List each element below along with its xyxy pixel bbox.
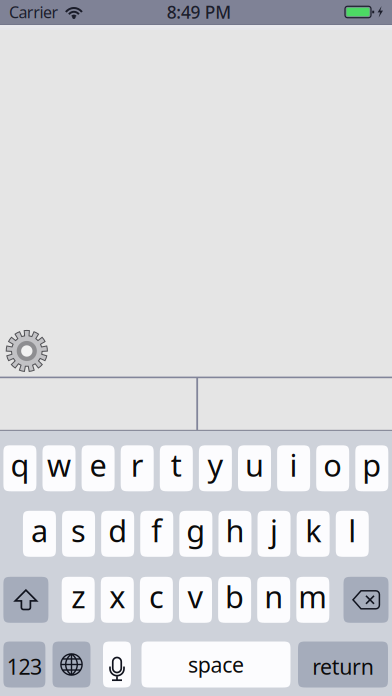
button[interactable]: y bbox=[199, 445, 232, 491]
staticText: Carrier bbox=[9, 1, 58, 23]
staticText: p bbox=[362, 444, 381, 485]
button[interactable]: h bbox=[218, 511, 251, 557]
button[interactable]: u bbox=[238, 445, 271, 491]
staticText: m bbox=[298, 576, 327, 617]
staticText: s bbox=[71, 510, 86, 551]
button[interactable]: o bbox=[316, 445, 349, 491]
staticText: r bbox=[131, 444, 144, 485]
staticText: q bbox=[10, 444, 29, 485]
button[interactable]: p bbox=[355, 445, 388, 491]
button[interactable]: return bbox=[298, 641, 388, 687]
button[interactable]: s bbox=[62, 511, 95, 557]
staticText: z bbox=[71, 576, 85, 617]
button[interactable]: m bbox=[296, 577, 329, 623]
button[interactable]: space bbox=[141, 641, 290, 687]
staticText: n bbox=[264, 576, 283, 617]
button[interactable]: w bbox=[42, 445, 75, 491]
button[interactable]: n bbox=[257, 577, 290, 623]
staticText: o bbox=[323, 444, 342, 485]
staticText: t bbox=[171, 444, 182, 485]
staticText: k bbox=[305, 510, 321, 551]
staticText: v bbox=[187, 576, 203, 617]
button[interactable]: a bbox=[23, 511, 56, 557]
button[interactable]: d bbox=[101, 511, 134, 557]
staticText: j bbox=[270, 510, 278, 551]
button[interactable]: l bbox=[336, 511, 369, 557]
staticText: space bbox=[188, 650, 244, 679]
staticText: i bbox=[290, 444, 298, 485]
button[interactable]: e bbox=[82, 445, 115, 491]
staticText: h bbox=[225, 510, 244, 551]
button[interactable] bbox=[343, 577, 388, 623]
button[interactable]: i bbox=[277, 445, 310, 491]
staticText: e bbox=[90, 444, 107, 485]
button[interactable]: c bbox=[140, 577, 173, 623]
staticText: 8:49 PM bbox=[167, 0, 231, 23]
staticText: a bbox=[31, 510, 48, 551]
staticText: return bbox=[312, 652, 374, 681]
button[interactable]: b bbox=[218, 577, 251, 623]
button[interactable]: r bbox=[121, 445, 154, 491]
button[interactable]: t bbox=[160, 445, 193, 491]
button[interactable]: 123 bbox=[3, 641, 45, 687]
staticText: d bbox=[108, 510, 127, 551]
staticText: u bbox=[245, 444, 264, 485]
staticText: g bbox=[186, 510, 205, 551]
staticText: b bbox=[225, 576, 244, 617]
staticText: l bbox=[348, 510, 356, 551]
staticText: f bbox=[151, 510, 162, 551]
button[interactable]: j bbox=[258, 511, 291, 557]
staticText: c bbox=[149, 576, 164, 617]
staticText: x bbox=[109, 576, 125, 617]
button[interactable] bbox=[52, 641, 90, 687]
staticText: y bbox=[207, 444, 223, 485]
button[interactable]: q bbox=[3, 445, 36, 491]
button[interactable]: x bbox=[101, 577, 134, 623]
button[interactable]: k bbox=[297, 511, 330, 557]
staticText: 123 bbox=[7, 652, 42, 681]
button[interactable]: z bbox=[62, 577, 95, 623]
button[interactable]: f bbox=[140, 511, 173, 557]
button[interactable]: g bbox=[179, 511, 212, 557]
button[interactable]: v bbox=[179, 577, 212, 623]
button[interactable] bbox=[103, 641, 131, 687]
button[interactable] bbox=[3, 577, 48, 623]
staticText: w bbox=[47, 444, 71, 485]
